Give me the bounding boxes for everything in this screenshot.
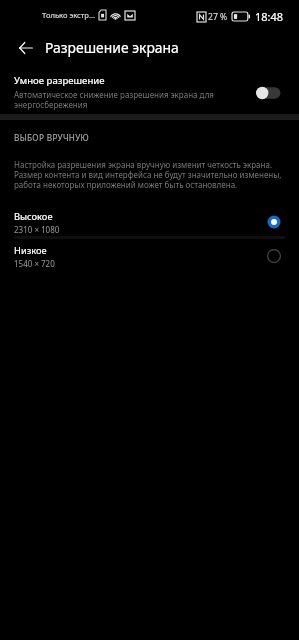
staticText: Низкое — [14, 244, 47, 257]
staticText: Разрешение экрана — [45, 38, 179, 57]
button[interactable]: Умное разрешение — [0, 66, 299, 112]
staticText: 1540 × 720 — [14, 258, 55, 269]
button[interactable]: Выбрать Низкое — [263, 245, 285, 267]
staticText: Только экстр... — [42, 10, 96, 20]
staticText: Автоматическое снижение разрешения экран… — [14, 89, 229, 111]
staticText: Настройка разрешения экрана вручную изме… — [14, 159, 292, 191]
button[interactable]: Умное разрешение — [255, 85, 283, 101]
staticText: 18:48 — [255, 9, 284, 24]
button[interactable]: Назад — [9, 31, 43, 65]
staticText: 27 % — [208, 11, 228, 23]
staticText: 2310 × 1080 — [14, 224, 60, 235]
staticText: ВЫБОР ВРУЧНУЮ — [14, 132, 90, 143]
staticText: Высокое — [14, 210, 53, 223]
button[interactable]: Низкое — [0, 241, 299, 270]
button[interactable]: Выбрано: Высокое — [263, 211, 285, 233]
button[interactable]: Высокое — [0, 207, 299, 236]
staticText: Умное разрешение — [14, 74, 105, 87]
